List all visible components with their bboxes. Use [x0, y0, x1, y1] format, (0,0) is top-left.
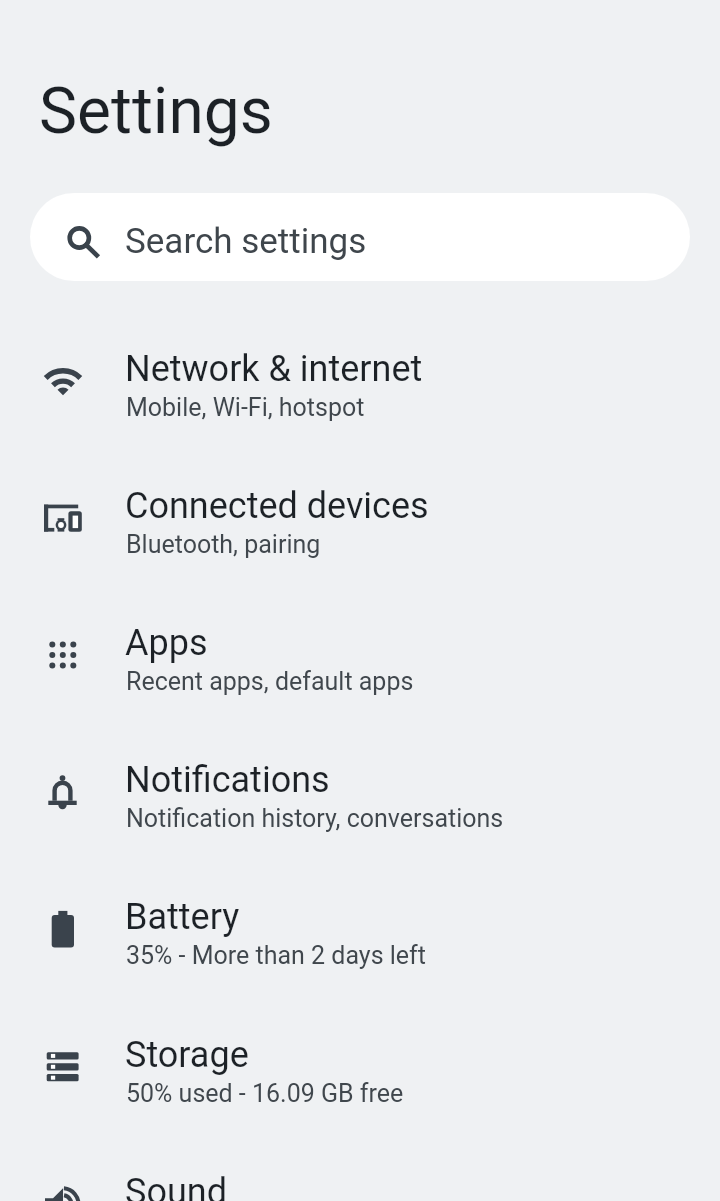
- staticText: Bluetooth, pairing: [126, 530, 321, 559]
- button[interactable]: Storage: [0, 1003, 720, 1140]
- staticText: Storage: [125, 1034, 249, 1076]
- button[interactable]: Notifications: [0, 728, 720, 865]
- staticText: Network & internet: [125, 348, 423, 390]
- staticText: Recent apps, default apps: [126, 667, 414, 696]
- staticText: 35% - More than 2 days left: [126, 941, 426, 970]
- staticText: Battery: [125, 896, 240, 938]
- button[interactable]: Sound: [0, 1140, 720, 1201]
- staticText: Settings: [39, 74, 273, 149]
- button[interactable]: Battery: [0, 865, 720, 1002]
- button[interactable]: Connected devices: [0, 454, 720, 591]
- button[interactable]: Search settings: [30, 193, 690, 281]
- staticText: Connected devices: [125, 485, 429, 527]
- button[interactable]: Network & internet: [0, 317, 720, 454]
- staticText: Mobile, Wi-Fi, hotspot: [126, 393, 365, 422]
- staticText: Apps: [125, 622, 208, 664]
- staticText: Sound: [125, 1171, 227, 1201]
- staticText: 50% used - 16.09 GB free: [126, 1079, 404, 1108]
- staticText: Notification history, conversations: [126, 804, 504, 833]
- staticText: Notifications: [125, 759, 330, 801]
- staticText: Search settings: [125, 221, 367, 262]
- button[interactable]: Apps: [0, 591, 720, 728]
